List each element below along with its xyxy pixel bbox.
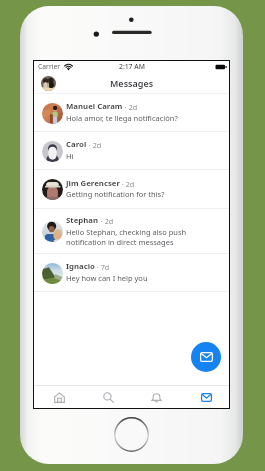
button[interactable]: Stephan (34, 209, 229, 254)
staticText: · 7d (95, 262, 110, 272)
staticText: 2:17 AM (119, 62, 145, 71)
button[interactable]: Manuel Caram (34, 94, 229, 132)
staticText: · 2d (123, 102, 138, 112)
button[interactable]: Messages (186, 386, 226, 408)
staticText: Carol (66, 139, 87, 150)
staticText: Hey how can I help you (66, 273, 148, 283)
staticText: notification in direct messages (66, 237, 174, 247)
staticText: Stephan (66, 215, 99, 226)
staticText: Ignacio (66, 261, 95, 272)
button[interactable]: Home (39, 386, 79, 408)
staticText: · 2d (87, 140, 102, 150)
staticText: Hola amor, te llega notificación? (66, 113, 178, 123)
staticText: · 2d (99, 216, 114, 226)
staticText: · 2d (120, 179, 135, 189)
button[interactable]: Ignacio (34, 254, 229, 292)
button[interactable]: New message (191, 342, 221, 372)
staticText: Hi (66, 151, 74, 161)
button[interactable]: Profile (41, 76, 56, 91)
staticText: Manuel Caram (66, 101, 123, 112)
staticText: Getting notification for this? (66, 189, 165, 199)
staticText: Jim Gerencser (66, 178, 120, 189)
staticText: Carrier (38, 62, 61, 71)
staticText: Hello Stephan, checking also push (66, 227, 187, 237)
staticText: Messages (110, 77, 154, 89)
button[interactable]: Carol (34, 132, 229, 170)
button[interactable]: Notifications (136, 386, 176, 408)
button[interactable]: Search (88, 386, 128, 408)
button[interactable]: Jim Gerencser (34, 170, 229, 209)
